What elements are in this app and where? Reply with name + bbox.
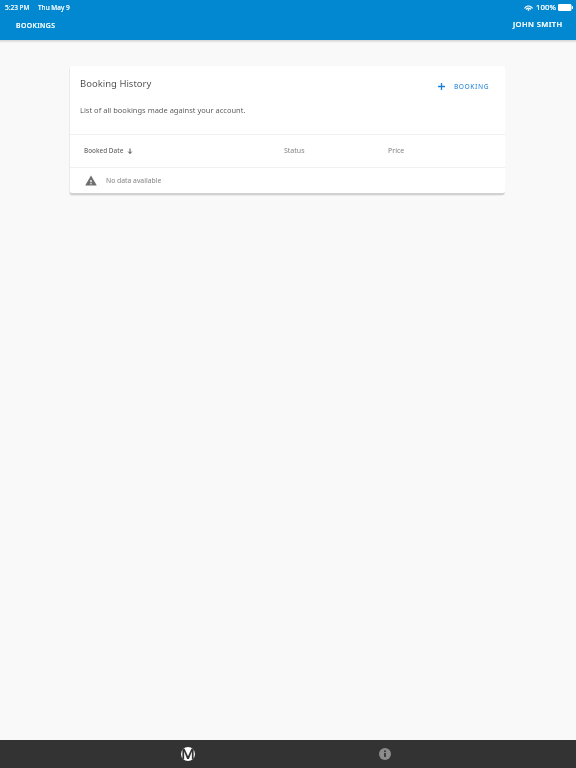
staticText: 100% <box>536 2 556 13</box>
button[interactable]: BOOKINGS <box>0 18 66 33</box>
button[interactable]: Home <box>174 740 202 768</box>
staticText: Status <box>284 146 305 156</box>
staticText: No data available <box>106 176 162 185</box>
staticText: 5:23 PM <box>5 3 30 12</box>
staticText: BOOKING <box>454 82 490 91</box>
button[interactable]: JOHN SMITH <box>503 16 576 32</box>
button[interactable]: BOOKING <box>432 77 496 96</box>
staticText: Booking History <box>80 77 152 90</box>
button[interactable]: Booked Date <box>80 142 137 159</box>
staticText: Booked Date <box>84 146 124 155</box>
staticText: Price <box>388 146 405 156</box>
staticText: BOOKINGS <box>16 21 56 30</box>
staticText: List of all bookings made against your a… <box>80 105 246 115</box>
staticText: Thu May 9 <box>38 3 70 12</box>
staticText: JOHN SMITH <box>513 19 563 29</box>
button[interactable]: Info <box>371 740 399 768</box>
